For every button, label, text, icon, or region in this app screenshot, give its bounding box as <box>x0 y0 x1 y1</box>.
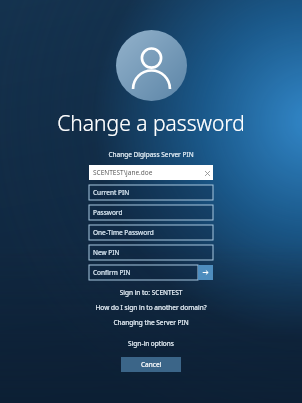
button[interactable]: One-Time Password <box>89 225 213 240</box>
staticText: Current PIN <box>93 188 130 197</box>
button[interactable]: Sign-in options <box>0 339 302 348</box>
button[interactable]: Submit <box>198 265 213 280</box>
staticText: Changing the Server PIN <box>0 318 302 327</box>
staticText: How do I sign in to another domain? <box>0 303 302 312</box>
button[interactable]: Cancel <box>121 357 181 372</box>
button[interactable]: Confirm PIN <box>89 265 213 280</box>
staticText: New PIN <box>93 248 120 257</box>
button[interactable]: How do I sign in to another domain? <box>0 303 302 312</box>
button[interactable]: Sign in to: SCENTEST <box>0 288 302 297</box>
button[interactable]: New PIN <box>89 245 213 260</box>
staticText: Cancel <box>141 360 162 369</box>
button[interactable]: Password <box>89 205 213 220</box>
staticText: Change Digipass Server PIN <box>0 150 302 159</box>
button[interactable]: Clear <box>201 167 213 179</box>
staticText: Change a password <box>0 109 302 138</box>
button[interactable]: SCENTEST\jane.doe <box>89 165 213 180</box>
staticText: Sign-in options <box>0 339 302 348</box>
staticText: One-Time Password <box>93 228 154 237</box>
button[interactable]: Current PIN <box>89 185 213 200</box>
staticText: Confirm PIN <box>93 268 131 277</box>
staticText: Sign in to: SCENTEST <box>0 288 302 297</box>
staticText: SCENTEST\jane.doe <box>93 168 201 177</box>
staticText: Password <box>93 208 123 217</box>
button[interactable]: Changing the Server PIN <box>0 318 302 327</box>
